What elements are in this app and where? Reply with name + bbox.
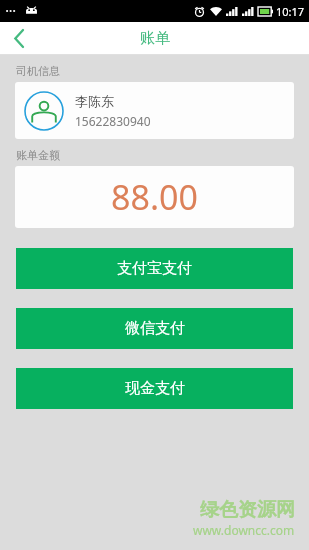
button[interactable]: 微信支付	[16, 308, 293, 349]
button[interactable]: 李陈东	[15, 82, 294, 139]
staticText: 88.00	[111, 174, 198, 220]
button[interactable]: 现金支付	[16, 368, 293, 409]
staticText: www.downcc.com	[193, 522, 295, 538]
staticText: 15622830940	[75, 113, 151, 129]
staticText: 绿色资源网	[200, 498, 295, 522]
staticText: 账单金额	[16, 148, 60, 162]
staticText: 10:17	[276, 4, 305, 19]
button[interactable]: 支付宝支付	[16, 248, 293, 289]
staticText: 账单	[140, 29, 170, 48]
staticText: 李陈东	[75, 93, 114, 109]
staticText: 司机信息	[16, 64, 60, 78]
staticText: 微信支付	[125, 319, 185, 338]
staticText: 现金支付	[125, 379, 185, 398]
staticText: 支付宝支付	[117, 259, 192, 278]
button[interactable]: Back	[0, 22, 38, 55]
